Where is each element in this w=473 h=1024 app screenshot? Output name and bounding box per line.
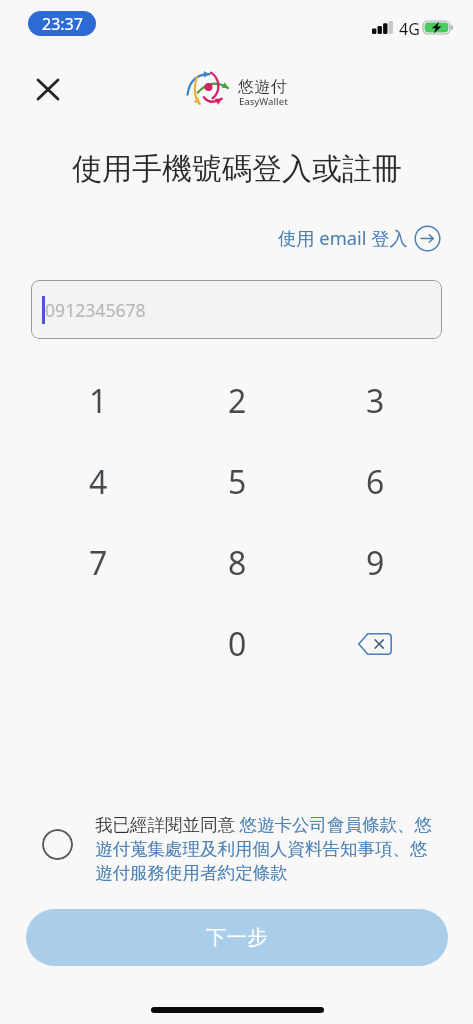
button[interactable]: Close — [26, 66, 70, 110]
button[interactable]: 4 — [29, 441, 168, 522]
staticText: 6 — [366, 460, 385, 504]
button[interactable]: 下一步 — [26, 909, 448, 966]
button[interactable]: 5 — [168, 441, 306, 522]
staticText: 我已經詳閱並同意 悠遊卡公司會員條款、悠遊付蒐集處理及利用個人資料告知事項、悠遊… — [95, 812, 440, 884]
button[interactable]: 2 — [168, 360, 306, 441]
staticText: 9 — [366, 541, 385, 585]
button[interactable]: Backspace — [306, 603, 444, 684]
button[interactable]: 6 — [306, 441, 444, 522]
staticText: 悠遊付 — [238, 77, 288, 97]
staticText: 4 — [89, 460, 108, 504]
staticText: 4G — [399, 18, 420, 40]
other: Backspace — [358, 633, 392, 655]
staticText: 8 — [228, 541, 247, 585]
staticText: EasyWallet — [239, 95, 288, 108]
staticText: 23:37 — [42, 13, 83, 35]
staticText: 7 — [89, 541, 108, 585]
staticText: 5 — [228, 460, 247, 504]
staticText: 使用手機號碼登入或註冊 — [72, 150, 402, 188]
button[interactable]: 3 — [306, 360, 444, 441]
button[interactable]: 0 — [168, 603, 306, 684]
button[interactable]: 1 — [29, 360, 168, 441]
button[interactable]: 0912345678 — [31, 280, 442, 339]
staticText: 3 — [366, 379, 385, 423]
staticText: 下一步 — [206, 925, 269, 950]
staticText: 2 — [228, 379, 247, 423]
button[interactable]: Agree to terms checkbox — [42, 829, 73, 860]
staticText: 1 — [89, 379, 108, 423]
button[interactable]: 7 — [29, 522, 168, 603]
staticText: 0 — [228, 622, 247, 666]
staticText: 0912345678 — [45, 298, 146, 322]
staticText: 使用 email 登入 — [278, 225, 408, 250]
button[interactable]: 8 — [168, 522, 306, 603]
button[interactable]: 使用 email 登入 — [272, 222, 446, 256]
button[interactable]: 9 — [306, 522, 444, 603]
